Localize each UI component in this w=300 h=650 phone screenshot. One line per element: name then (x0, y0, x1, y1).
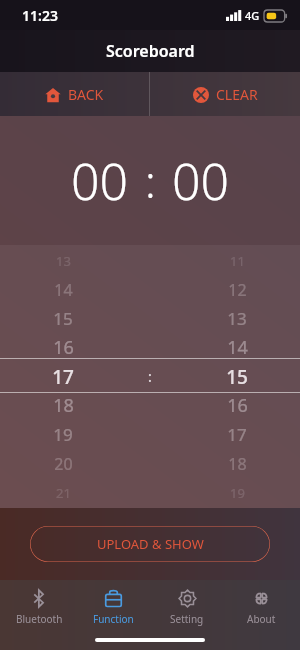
staticText: 11 (230, 252, 245, 270)
button[interactable]: Function (78, 588, 148, 626)
staticText: 14 (54, 279, 73, 301)
staticText: 20 (54, 453, 73, 475)
staticText: 15 (226, 364, 248, 390)
staticText: 15 (53, 307, 73, 330)
staticText: UPLOAD & SHOW (97, 535, 204, 553)
button[interactable]: Bluetooth (4, 588, 74, 626)
staticText: Setting (170, 612, 204, 626)
staticText: 00 (172, 147, 230, 215)
staticText: 14 (227, 335, 248, 360)
button[interactable]: CLEAR (150, 72, 300, 116)
other: Bluetooth (29, 588, 50, 609)
staticText: 00 (71, 147, 129, 215)
staticText: About (247, 612, 276, 626)
staticText: 13 (56, 252, 71, 270)
staticText: 13 (227, 307, 247, 330)
staticText: BACK (68, 85, 104, 104)
staticText: 18 (53, 393, 74, 418)
staticText: 16 (227, 393, 248, 418)
other: Function (103, 588, 124, 609)
button[interactable]: BACK (0, 72, 149, 116)
staticText: 19 (230, 484, 245, 502)
other: Setting (177, 588, 198, 609)
staticText: 12 (228, 279, 247, 301)
button[interactable]: 11 (174, 245, 300, 508)
staticText: CLEAR (216, 85, 258, 104)
other: About (251, 588, 272, 609)
staticText: 19 (53, 423, 73, 446)
staticText: 18 (228, 453, 247, 475)
staticText: 17 (52, 364, 74, 390)
staticText: Function (93, 612, 134, 626)
staticText: : (145, 151, 156, 211)
staticText: Scoreboard (106, 40, 195, 62)
button[interactable]: 13 (0, 245, 126, 508)
staticText: 21 (56, 484, 71, 502)
staticText: Bluetooth (16, 612, 63, 626)
staticText: 11:23 (22, 6, 58, 25)
staticText: 16 (53, 335, 74, 360)
staticText: : (148, 367, 152, 386)
button[interactable]: Setting (152, 588, 222, 626)
button[interactable]: UPLOAD & SHOW (30, 526, 270, 562)
staticText: 4G (245, 8, 260, 23)
button[interactable]: About (226, 588, 296, 626)
staticText: 17 (227, 423, 247, 446)
